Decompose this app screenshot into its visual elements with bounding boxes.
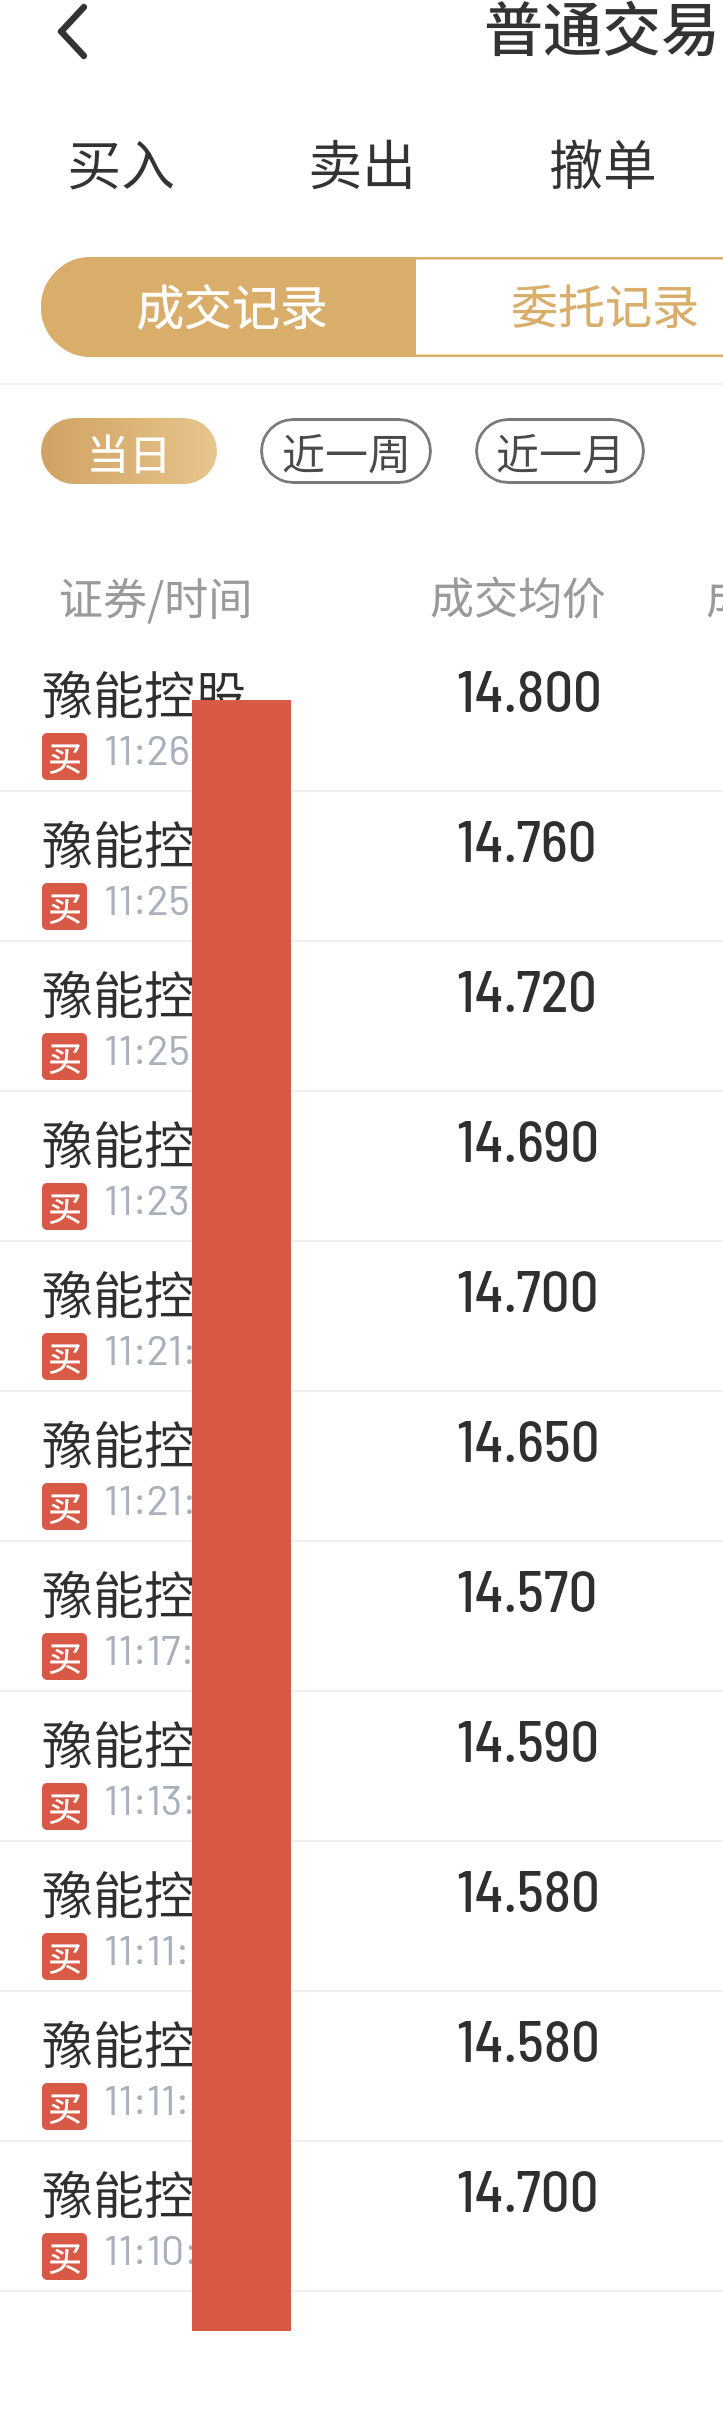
staticText: 14.570 xyxy=(457,1555,598,1623)
staticText: 11:25:48 xyxy=(104,874,248,923)
button[interactable]: 豫能控股 xyxy=(0,1842,723,1992)
staticText: 买 xyxy=(48,2233,82,2279)
button[interactable]: 卖出 xyxy=(241,115,482,207)
staticText: 11:21:03 xyxy=(104,1474,241,1523)
staticText: 买 xyxy=(48,1633,82,1679)
staticText: 买 xyxy=(48,1183,82,1229)
staticText: 证券/时间 xyxy=(59,564,253,628)
staticText: 豫能控股 xyxy=(42,2155,247,2229)
staticText: 豫能控股 xyxy=(42,655,247,729)
staticText: 14.720 xyxy=(457,955,597,1023)
staticText: 11:10:42 xyxy=(104,2224,243,2273)
button[interactable]: 近一周 xyxy=(260,418,432,484)
staticText: 14.580 xyxy=(457,2005,600,2073)
staticText: 豫能控股 xyxy=(42,955,247,1029)
staticText: 成交均价 xyxy=(430,563,606,627)
staticText: 当日 xyxy=(87,421,172,482)
staticText: 买 xyxy=(48,1333,82,1379)
staticText: 买 xyxy=(48,1783,82,1829)
staticText: 豫能控股 xyxy=(42,1255,247,1329)
staticText: 11:17:36 xyxy=(104,1624,237,1673)
staticText: 豫能控股 xyxy=(42,1105,247,1179)
staticText: 豫能控股 xyxy=(42,1705,247,1779)
staticText: 豫能控股 xyxy=(42,1555,247,1629)
button[interactable]: 豫能控股 xyxy=(0,792,723,942)
staticText: 11:11:18 xyxy=(104,2074,226,2123)
staticText: 14.690 xyxy=(457,1105,600,1173)
staticText: 14.700 xyxy=(457,1255,599,1323)
staticText: 11:13:27 xyxy=(104,1774,238,1823)
staticText: 14.760 xyxy=(457,805,597,873)
button[interactable]: 委托记录 xyxy=(416,257,723,357)
button[interactable]: 豫能控股 xyxy=(0,942,723,1092)
button[interactable]: 近一月 xyxy=(475,418,645,484)
staticText: 近一周 xyxy=(282,420,411,482)
staticText: 11:26:51 xyxy=(104,724,238,773)
staticText: 14.650 xyxy=(457,1405,600,1473)
staticText: 豫能控股 xyxy=(42,805,247,879)
staticText: 近一月 xyxy=(496,420,625,482)
staticText: 买 xyxy=(48,2083,82,2129)
staticText: 普通交易 xyxy=(484,0,721,68)
staticText: 买入 xyxy=(67,122,175,200)
staticText: 买 xyxy=(48,1933,82,1979)
staticText: 豫能控股 xyxy=(42,1405,247,1479)
button[interactable]: 豫能控股 xyxy=(0,1242,723,1392)
staticText: 撤单 xyxy=(549,122,657,200)
button[interactable]: 撤单 xyxy=(482,115,723,207)
staticText: 14.800 xyxy=(457,655,603,723)
staticText: 买 xyxy=(48,1483,82,1529)
button[interactable]: 成交记录 xyxy=(41,257,416,357)
staticText: 14.580 xyxy=(457,1855,600,1923)
staticText: 14.700 xyxy=(457,2155,599,2223)
staticText: 委托记录 xyxy=(511,269,699,337)
staticText: 豫能控股 xyxy=(42,2005,247,2079)
button[interactable]: 当日 xyxy=(41,418,217,484)
staticText: 14.590 xyxy=(457,1705,600,1773)
staticText: 买 xyxy=(48,733,82,779)
button[interactable]: 豫能控股 xyxy=(0,1542,723,1692)
staticText: 卖出 xyxy=(308,122,416,200)
staticText: 11:21:45 xyxy=(104,1324,241,1373)
staticText: 11:11:54 xyxy=(104,1924,234,1973)
button[interactable]: Back xyxy=(44,0,102,64)
button[interactable]: 豫能控股 xyxy=(0,1692,723,1842)
staticText: 买 xyxy=(48,1033,82,1079)
staticText: 成交记录 xyxy=(136,269,329,339)
staticText: 买 xyxy=(48,883,82,929)
staticText: 11:23:09 xyxy=(104,1174,248,1223)
button[interactable]: 豫能控股 xyxy=(0,642,723,792)
staticText: 成交量 xyxy=(706,563,723,627)
button[interactable]: 豫能控股 xyxy=(0,2142,723,2292)
button[interactable]: 买入 xyxy=(0,115,241,207)
staticText: 豫能控股 xyxy=(42,1855,247,1929)
button[interactable]: 豫能控股 xyxy=(0,1992,723,2142)
button[interactable]: 豫能控股 xyxy=(0,1092,723,1242)
button[interactable]: 豫能控股 xyxy=(0,1392,723,1542)
staticText: 11:25:12 xyxy=(104,1024,240,1073)
